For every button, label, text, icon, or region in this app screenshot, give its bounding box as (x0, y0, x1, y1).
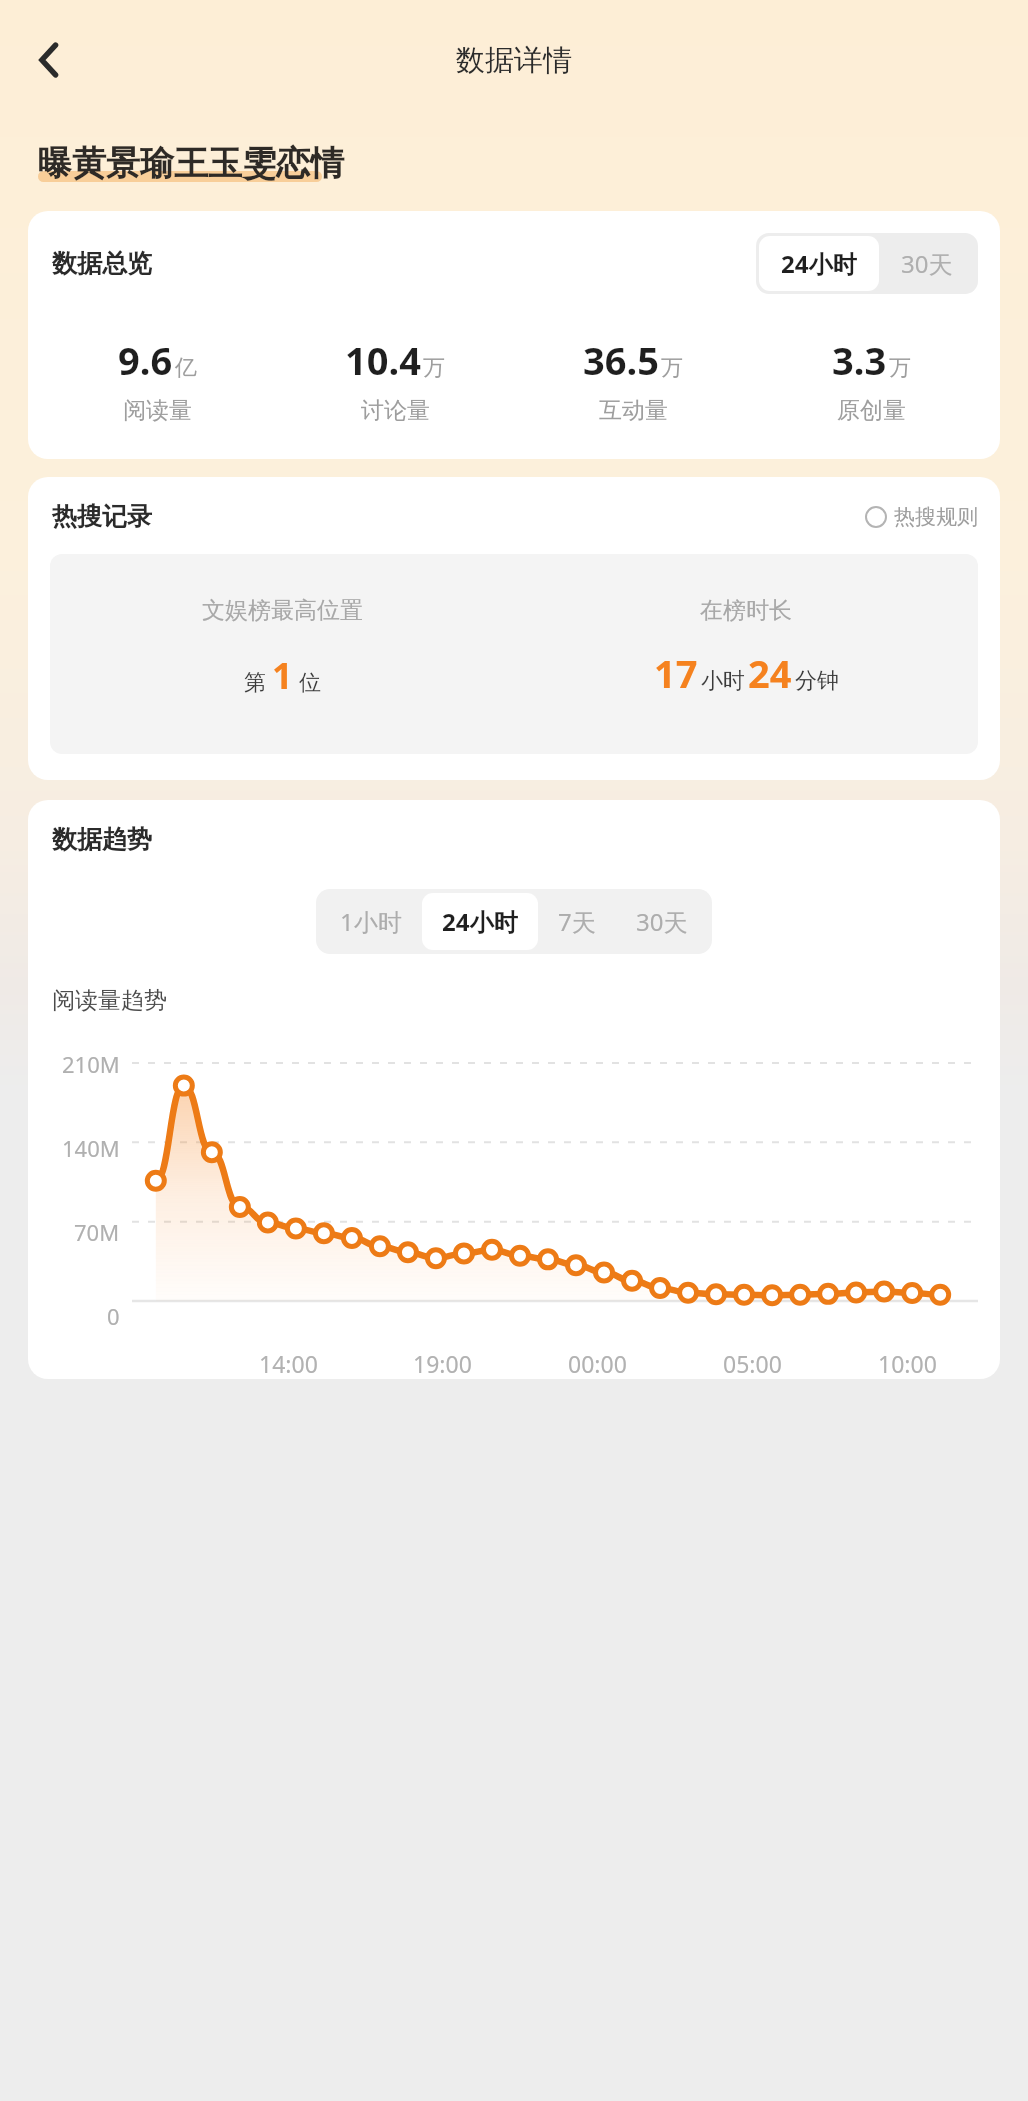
staticText: 140M (62, 1133, 120, 1163)
staticText: 阅读量趋势 (52, 986, 167, 1015)
staticText: 0 (107, 1301, 120, 1331)
button[interactable]: 24小时 (422, 893, 538, 950)
staticText: 阅读量 (123, 396, 192, 425)
staticText: 讨论量 (361, 396, 430, 425)
staticText: 05:00 (723, 1348, 782, 1379)
staticText: 文娱榜最高位置 (202, 596, 363, 625)
staticText: 万 (423, 354, 445, 382)
staticText: 10:00 (878, 1348, 937, 1379)
staticText: 在榜时长 (700, 596, 792, 625)
staticText: 210M (62, 1049, 120, 1079)
staticText: 00:00 (568, 1348, 627, 1379)
staticText: 19:00 (413, 1348, 472, 1379)
staticText: 位 (299, 669, 321, 697)
staticText: 热搜记录 (52, 501, 152, 532)
button[interactable]: 1小时 (320, 893, 422, 950)
staticText: 热搜规则 (894, 504, 978, 530)
staticText: 曝黄景瑜王玉雯恋情 (38, 142, 344, 185)
staticText: 30天 (636, 905, 688, 938)
staticText: 互动量 (599, 396, 668, 425)
staticText: 亿 (175, 354, 197, 382)
staticText: 分钟 (795, 667, 839, 695)
staticText: 1 (272, 651, 293, 700)
staticText: 24小时 (781, 247, 857, 280)
staticText: 数据趋势 (52, 824, 152, 855)
staticText: 14:00 (259, 1348, 318, 1379)
button[interactable]: 24小时 (759, 236, 879, 291)
staticText: 7天 (558, 905, 596, 938)
staticText: 70M (74, 1217, 120, 1247)
button[interactable]: 30天 (616, 893, 708, 950)
staticText: 万 (661, 354, 683, 382)
staticText: 36.5 (583, 334, 659, 386)
staticText: 17 (654, 647, 698, 699)
button[interactable]: 热搜规则 (865, 504, 978, 530)
staticText: 24 (748, 647, 792, 699)
button[interactable]: 7天 (538, 893, 616, 950)
staticText: 3.3 (832, 334, 887, 386)
staticText: 1小时 (340, 905, 402, 938)
staticText: 数据详情 (456, 42, 572, 79)
staticText: 原创量 (837, 396, 906, 425)
staticText: 10.4 (345, 334, 421, 386)
staticText: 小时 (701, 667, 745, 695)
staticText: 第 (244, 669, 266, 697)
button[interactable]: 30天 (879, 236, 975, 291)
staticText: 万 (889, 354, 911, 382)
button[interactable]: Back (14, 29, 76, 91)
staticText: 30天 (901, 247, 953, 280)
staticText: 数据总览 (52, 248, 152, 279)
staticText: 9.6 (118, 334, 173, 386)
staticText: 24小时 (442, 905, 518, 938)
